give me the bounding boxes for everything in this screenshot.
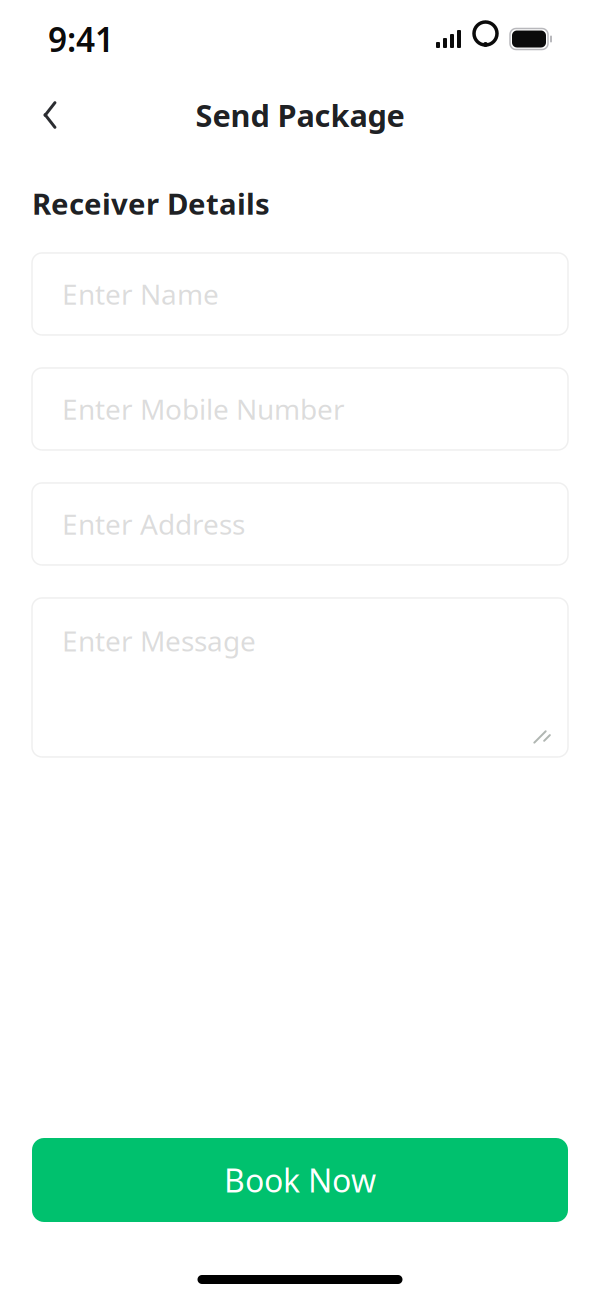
- button[interactable]: Enter Address: [32, 483, 568, 565]
- staticText: Enter Name: [62, 275, 219, 313]
- button[interactable]: Enter Message: [32, 598, 568, 757]
- button[interactable]: Enter Mobile Number: [32, 368, 568, 450]
- staticText: Receiver Details: [32, 184, 270, 223]
- button[interactable]: Book Now: [32, 1138, 568, 1222]
- staticText: 9:41: [48, 17, 114, 61]
- button[interactable]: Enter Name: [32, 253, 568, 335]
- staticText: Enter Message: [62, 622, 256, 659]
- staticText: Enter Mobile Number: [62, 390, 345, 428]
- button[interactable]: Back: [28, 93, 72, 137]
- staticText: Enter Address: [62, 505, 245, 543]
- staticText: Send Package: [195, 95, 404, 135]
- staticText: Book Now: [224, 1159, 376, 1201]
